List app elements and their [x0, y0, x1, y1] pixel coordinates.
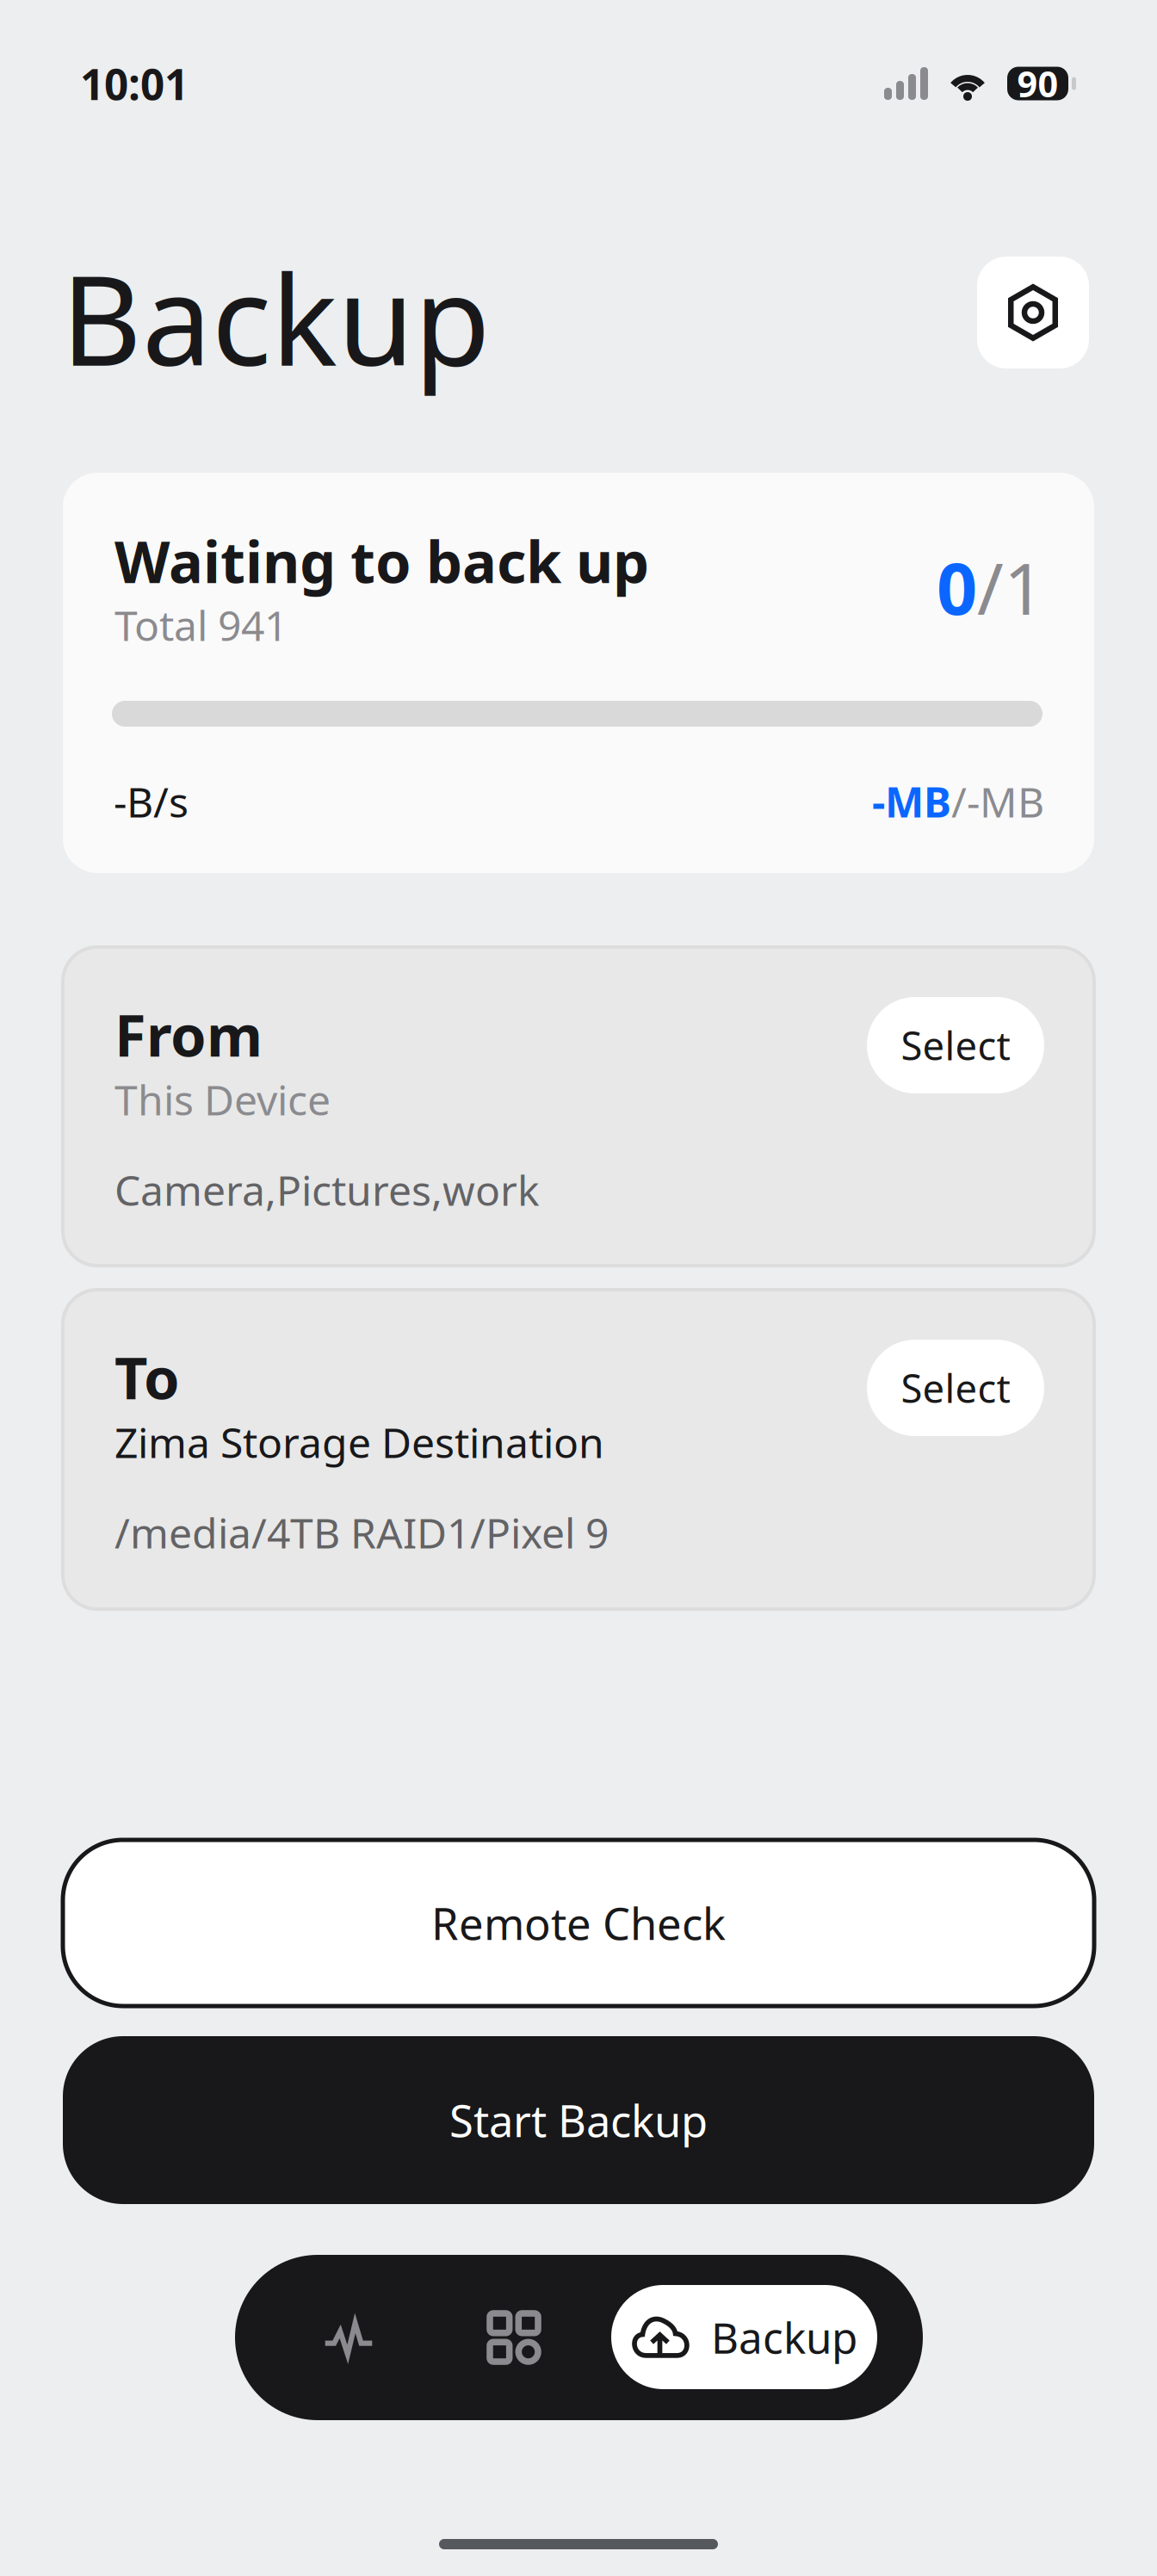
staticText: /media/4TB RAID1/Pixel 9	[114, 1505, 609, 1560]
staticText: /	[951, 774, 967, 829]
staticText: This Device	[114, 1072, 331, 1127]
button[interactable]: Activity	[293, 2255, 405, 2420]
staticText: 0	[937, 540, 977, 634]
staticText: 90	[1017, 60, 1058, 107]
button[interactable]: Select	[867, 997, 1044, 1093]
staticText: 1	[1004, 540, 1044, 634]
button[interactable]: Start Backup	[63, 2036, 1094, 2204]
staticText: From	[114, 996, 263, 1072]
staticText: To	[114, 1339, 180, 1415]
staticText: Select	[901, 1019, 1010, 1071]
button[interactable]: Backup	[611, 2285, 877, 2389]
staticText: Camera,Pictures,work	[114, 1162, 540, 1217]
staticText: Start Backup	[449, 2091, 708, 2149]
button[interactable]: Apps	[458, 2255, 570, 2420]
staticText: 10:01	[80, 55, 189, 112]
staticText: Backup	[61, 235, 491, 400]
button[interactable]: Remote Check	[63, 1840, 1094, 2006]
staticText: -MB	[967, 774, 1044, 829]
staticText: Total 941	[114, 598, 288, 652]
staticText: Remote Check	[431, 1894, 726, 1952]
staticText: -MB	[872, 774, 951, 829]
staticText: /	[977, 540, 1004, 634]
staticText: -B/s	[114, 774, 189, 829]
button[interactable]: Settings	[977, 257, 1089, 368]
staticText: Select	[901, 1362, 1010, 1414]
staticText: Zima Storage Destination	[114, 1415, 604, 1469]
staticText: Backup	[711, 2309, 857, 2365]
staticText: Waiting to back up	[114, 523, 649, 599]
button[interactable]: Select	[867, 1340, 1044, 1436]
